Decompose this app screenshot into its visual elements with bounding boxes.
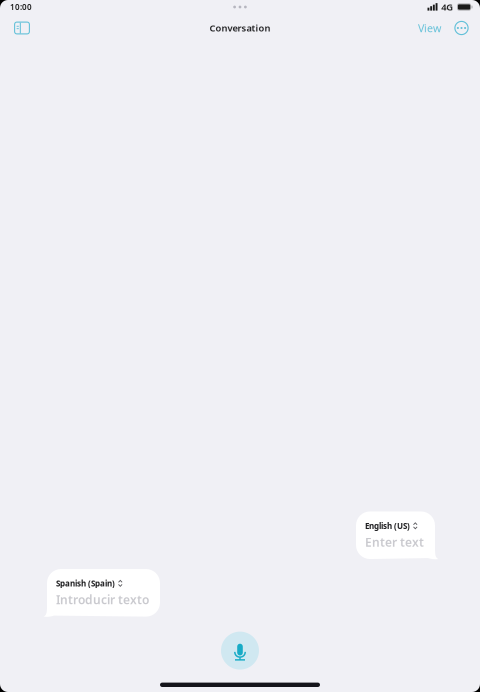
staticText: 10:00 <box>10 2 32 12</box>
button[interactable]: Start recording <box>221 632 259 670</box>
staticText: Introducir texto <box>56 592 149 608</box>
button[interactable]: Toggle sidebar <box>9 16 35 40</box>
staticText: Enter text <box>365 534 424 550</box>
staticText: Spanish (Spain) <box>56 578 115 589</box>
staticText: Conversation <box>209 22 270 34</box>
button[interactable]: View <box>413 16 449 40</box>
staticText: 4G <box>441 1 453 13</box>
button[interactable]: More options <box>449 16 474 40</box>
staticText: English (US) <box>365 520 410 531</box>
staticText: View <box>418 21 441 35</box>
